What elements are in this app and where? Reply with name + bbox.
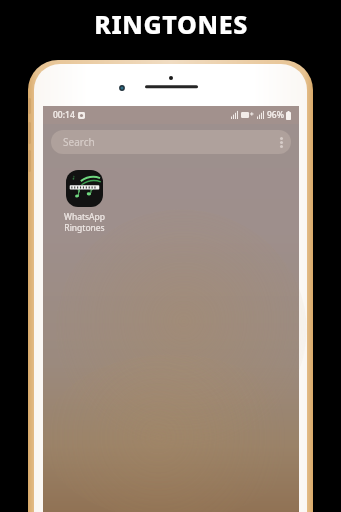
staticText: 00:14 [53, 109, 75, 121]
button[interactable]: Search [51, 130, 291, 154]
button[interactable]: WhatsApp Ringtones [53, 170, 115, 233]
staticText: WhatsApp Ringtones [64, 211, 105, 233]
staticText: Search [63, 135, 95, 149]
staticText: 96% [267, 109, 284, 121]
button[interactable]: More options [271, 132, 291, 152]
staticText: RINGTONES [94, 7, 248, 41]
